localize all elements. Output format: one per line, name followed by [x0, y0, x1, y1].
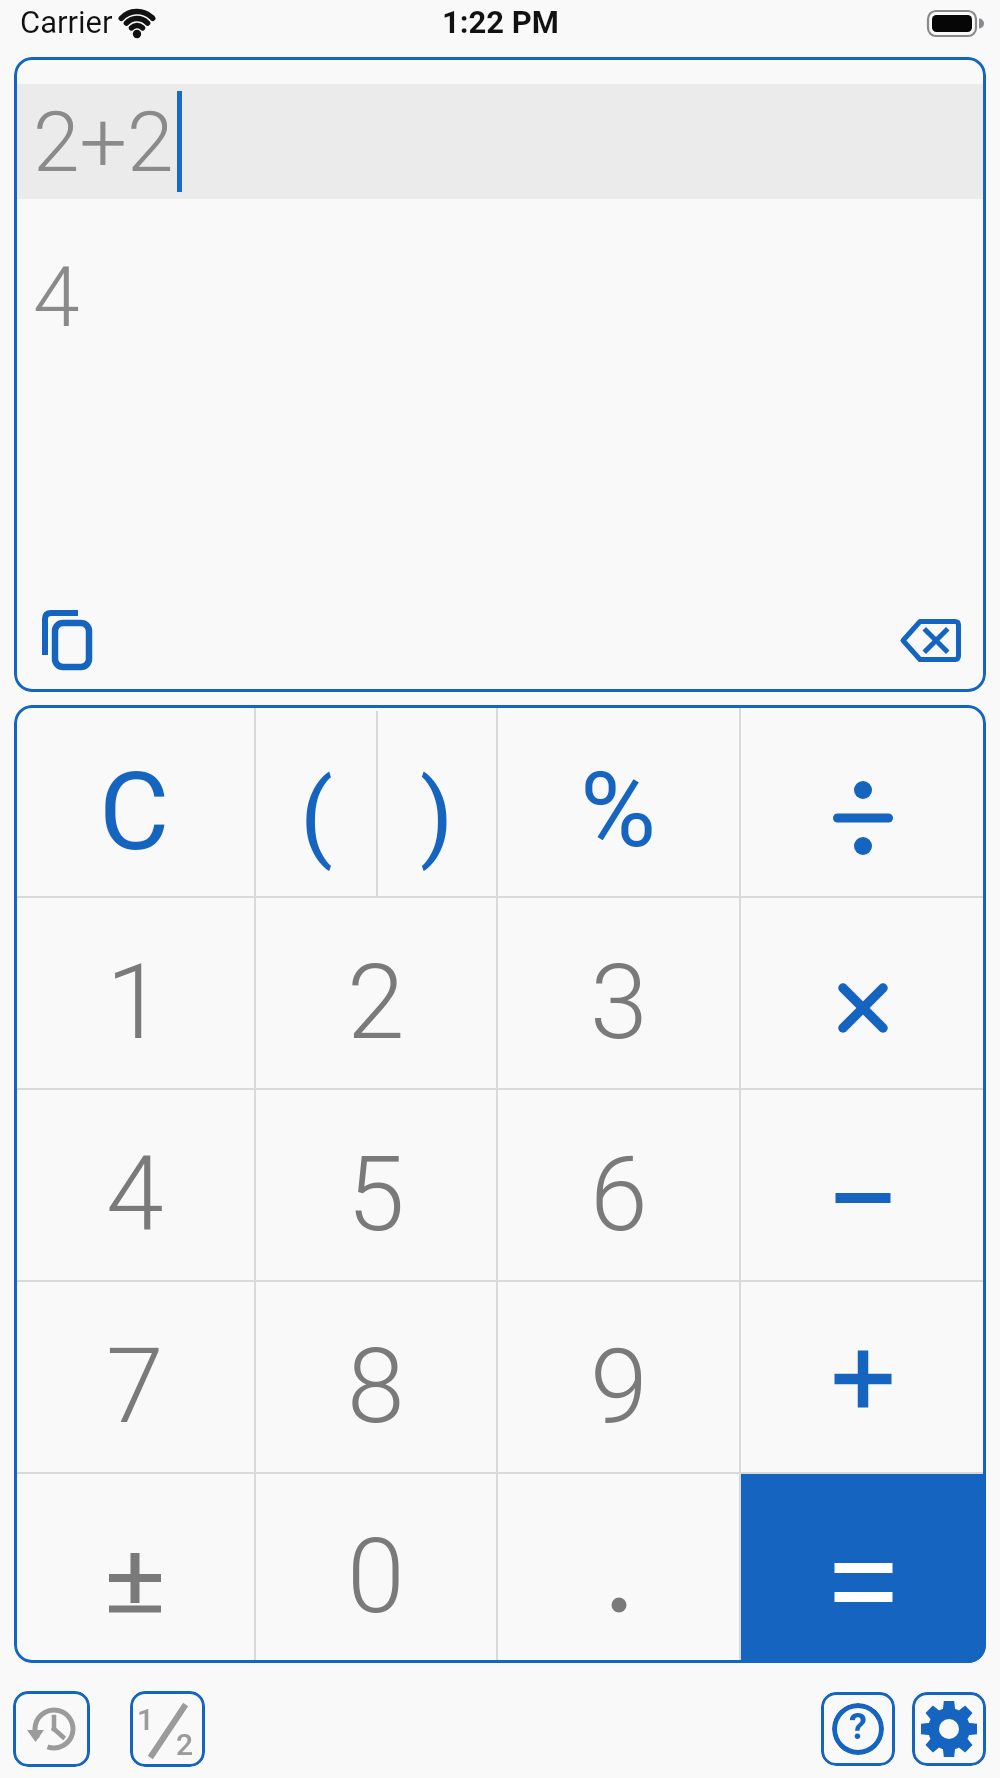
staticText: 8 — [347, 1326, 405, 1448]
staticText: ) — [420, 760, 454, 873]
staticText: 9 — [590, 1326, 648, 1448]
button[interactable] — [34, 602, 104, 677]
button[interactable]: 3 — [497, 897, 740, 1089]
button[interactable] — [741, 1474, 986, 1663]
button[interactable]: 1 — [130, 1691, 205, 1767]
button[interactable] — [740, 1089, 986, 1281]
button[interactable]: 8 — [255, 1281, 497, 1473]
staticText: 2 — [176, 1727, 194, 1762]
staticText: 4 — [106, 1134, 164, 1256]
staticText: C — [99, 749, 170, 876]
staticText: 6 — [590, 1134, 648, 1256]
staticText: ? — [849, 1706, 867, 1748]
button[interactable]: 9 — [497, 1281, 740, 1473]
button[interactable]: ? — [821, 1692, 895, 1766]
staticText: 2 — [347, 942, 405, 1064]
staticText: % — [580, 750, 657, 872]
staticText: 1 — [137, 1702, 155, 1737]
staticText: 0 — [347, 1516, 405, 1638]
button[interactable] — [740, 1281, 986, 1473]
button[interactable]: ( — [255, 705, 377, 897]
button[interactable]: 2 — [255, 897, 497, 1089]
button[interactable] — [912, 1692, 986, 1766]
button[interactable] — [740, 705, 986, 897]
button[interactable]: 0 — [255, 1473, 497, 1663]
staticText: ( — [300, 760, 333, 873]
button[interactable] — [13, 1691, 90, 1767]
staticText: Carrier — [20, 4, 113, 40]
button[interactable]: 6 — [497, 1089, 740, 1281]
button[interactable]: ) — [377, 705, 497, 897]
staticText: 2+2 — [33, 93, 174, 191]
button[interactable]: C — [14, 705, 255, 897]
button[interactable] — [14, 1473, 255, 1663]
staticText: 3 — [590, 942, 648, 1064]
button[interactable]: 7 — [14, 1281, 255, 1473]
button[interactable] — [740, 897, 986, 1089]
button[interactable] — [892, 607, 984, 673]
staticText: 1:22 PM — [442, 4, 559, 40]
staticText: 1 — [106, 942, 164, 1064]
staticText: 7 — [106, 1326, 164, 1448]
staticText: 5 — [347, 1134, 405, 1256]
staticText: 4 — [33, 248, 80, 346]
button[interactable]: % — [497, 705, 740, 897]
button[interactable]: 1 — [14, 897, 255, 1089]
button[interactable] — [497, 1473, 740, 1663]
button[interactable]: 5 — [255, 1089, 497, 1281]
button[interactable]: 4 — [14, 1089, 255, 1281]
